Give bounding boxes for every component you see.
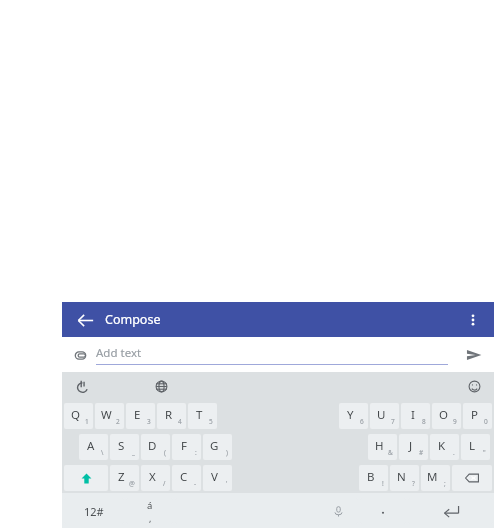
button[interactable]: G: [203, 434, 232, 460]
button[interactable]: Z: [110, 465, 139, 491]
staticText: ': [226, 479, 228, 488]
staticText: 9: [453, 417, 457, 426]
button[interactable]: J: [399, 434, 428, 460]
button[interactable]: C: [172, 465, 201, 491]
staticText: I: [411, 407, 415, 423]
button[interactable]: Symbols: [64, 498, 124, 524]
staticText: A: [87, 438, 95, 454]
staticText: @: [129, 479, 135, 488]
staticText: ): [226, 448, 228, 457]
staticText: L: [469, 438, 476, 454]
staticText: 12#: [84, 504, 104, 519]
button[interactable]: K: [430, 434, 459, 460]
button[interactable]: Add text: [96, 345, 448, 365]
staticText: :: [195, 448, 197, 457]
staticText: Add text: [96, 345, 142, 361]
button[interactable]: Y: [339, 403, 368, 429]
button[interactable]: X: [141, 465, 170, 491]
staticText: R: [165, 407, 173, 423]
staticText: H: [375, 438, 384, 454]
staticText: K: [438, 438, 446, 454]
staticText: D: [148, 438, 157, 454]
button[interactable]: Attach: [66, 341, 94, 369]
staticText: C: [180, 469, 188, 485]
button[interactable]: Handwriting: [70, 374, 94, 398]
button[interactable]: Send: [460, 341, 488, 369]
staticText: U: [377, 407, 386, 423]
button[interactable]: D: [141, 434, 170, 460]
staticText: _: [132, 448, 135, 457]
staticText: ": [483, 448, 486, 457]
staticText: P: [471, 407, 478, 423]
staticText: 5: [209, 417, 213, 426]
button[interactable]: More options: [458, 305, 488, 335]
button[interactable]: I: [401, 403, 430, 429]
staticText: 7: [391, 417, 395, 426]
button[interactable]: L: [461, 434, 490, 460]
staticText: 6: [360, 417, 364, 426]
button[interactable]: V: [203, 465, 232, 491]
button[interactable]: Emoji: [462, 374, 486, 398]
button[interactable]: A: [79, 434, 108, 460]
staticText: #: [419, 448, 424, 457]
staticText: 0: [484, 417, 488, 426]
button[interactable]: S: [110, 434, 139, 460]
staticText: E: [134, 407, 141, 423]
staticText: M: [427, 469, 438, 485]
staticText: /: [163, 479, 166, 488]
button[interactable]: W: [95, 403, 124, 429]
button[interactable]: R: [157, 403, 186, 429]
staticText: !: [382, 479, 384, 488]
staticText: N: [397, 469, 406, 485]
staticText: B: [367, 469, 375, 485]
staticText: X: [149, 469, 156, 485]
staticText: Z: [118, 469, 125, 485]
staticText: W: [101, 407, 112, 423]
button[interactable]: F: [172, 434, 201, 460]
staticText: 8: [422, 417, 426, 426]
button[interactable]: Back: [70, 305, 100, 335]
staticText: ,: [149, 512, 152, 524]
staticText: .: [453, 448, 455, 457]
staticText: J: [409, 438, 413, 454]
button[interactable]: N: [390, 465, 419, 491]
staticText: F: [181, 438, 187, 454]
staticText: 3: [147, 417, 151, 426]
button[interactable]: E: [126, 403, 155, 429]
button[interactable]: Change language: [149, 374, 173, 398]
staticText: &: [388, 448, 393, 457]
staticText: S: [118, 438, 125, 454]
button[interactable]: Q: [64, 403, 93, 429]
staticText: Compose: [105, 311, 161, 328]
button[interactable]: P: [463, 403, 492, 429]
button[interactable]: Backspace: [452, 465, 492, 491]
button[interactable]: U: [370, 403, 399, 429]
staticText: ;: [444, 479, 446, 488]
staticText: O: [439, 407, 448, 423]
staticText: 4: [178, 417, 182, 426]
staticText: V: [211, 469, 218, 485]
staticText: \: [101, 448, 104, 457]
button[interactable]: Space: [175, 498, 358, 524]
button[interactable]: T: [188, 403, 217, 429]
button[interactable]: O: [432, 403, 461, 429]
button[interactable]: Accents: [126, 498, 173, 524]
staticText: á: [147, 499, 153, 512]
button[interactable]: M: [421, 465, 450, 491]
button[interactable]: Shift: [64, 465, 108, 491]
staticText: 1: [85, 417, 89, 426]
staticText: Y: [347, 407, 354, 423]
button[interactable]: Enter: [408, 498, 493, 524]
staticText: 2: [116, 417, 120, 426]
staticText: Q: [71, 407, 80, 423]
staticText: G: [210, 438, 219, 454]
button[interactable]: B: [359, 465, 388, 491]
staticText: (: [164, 448, 166, 457]
button[interactable]: H: [368, 434, 397, 460]
staticText: -: [194, 479, 197, 488]
staticText: T: [196, 407, 203, 423]
button[interactable]: Period: [360, 498, 406, 524]
staticText: ?: [412, 479, 415, 488]
